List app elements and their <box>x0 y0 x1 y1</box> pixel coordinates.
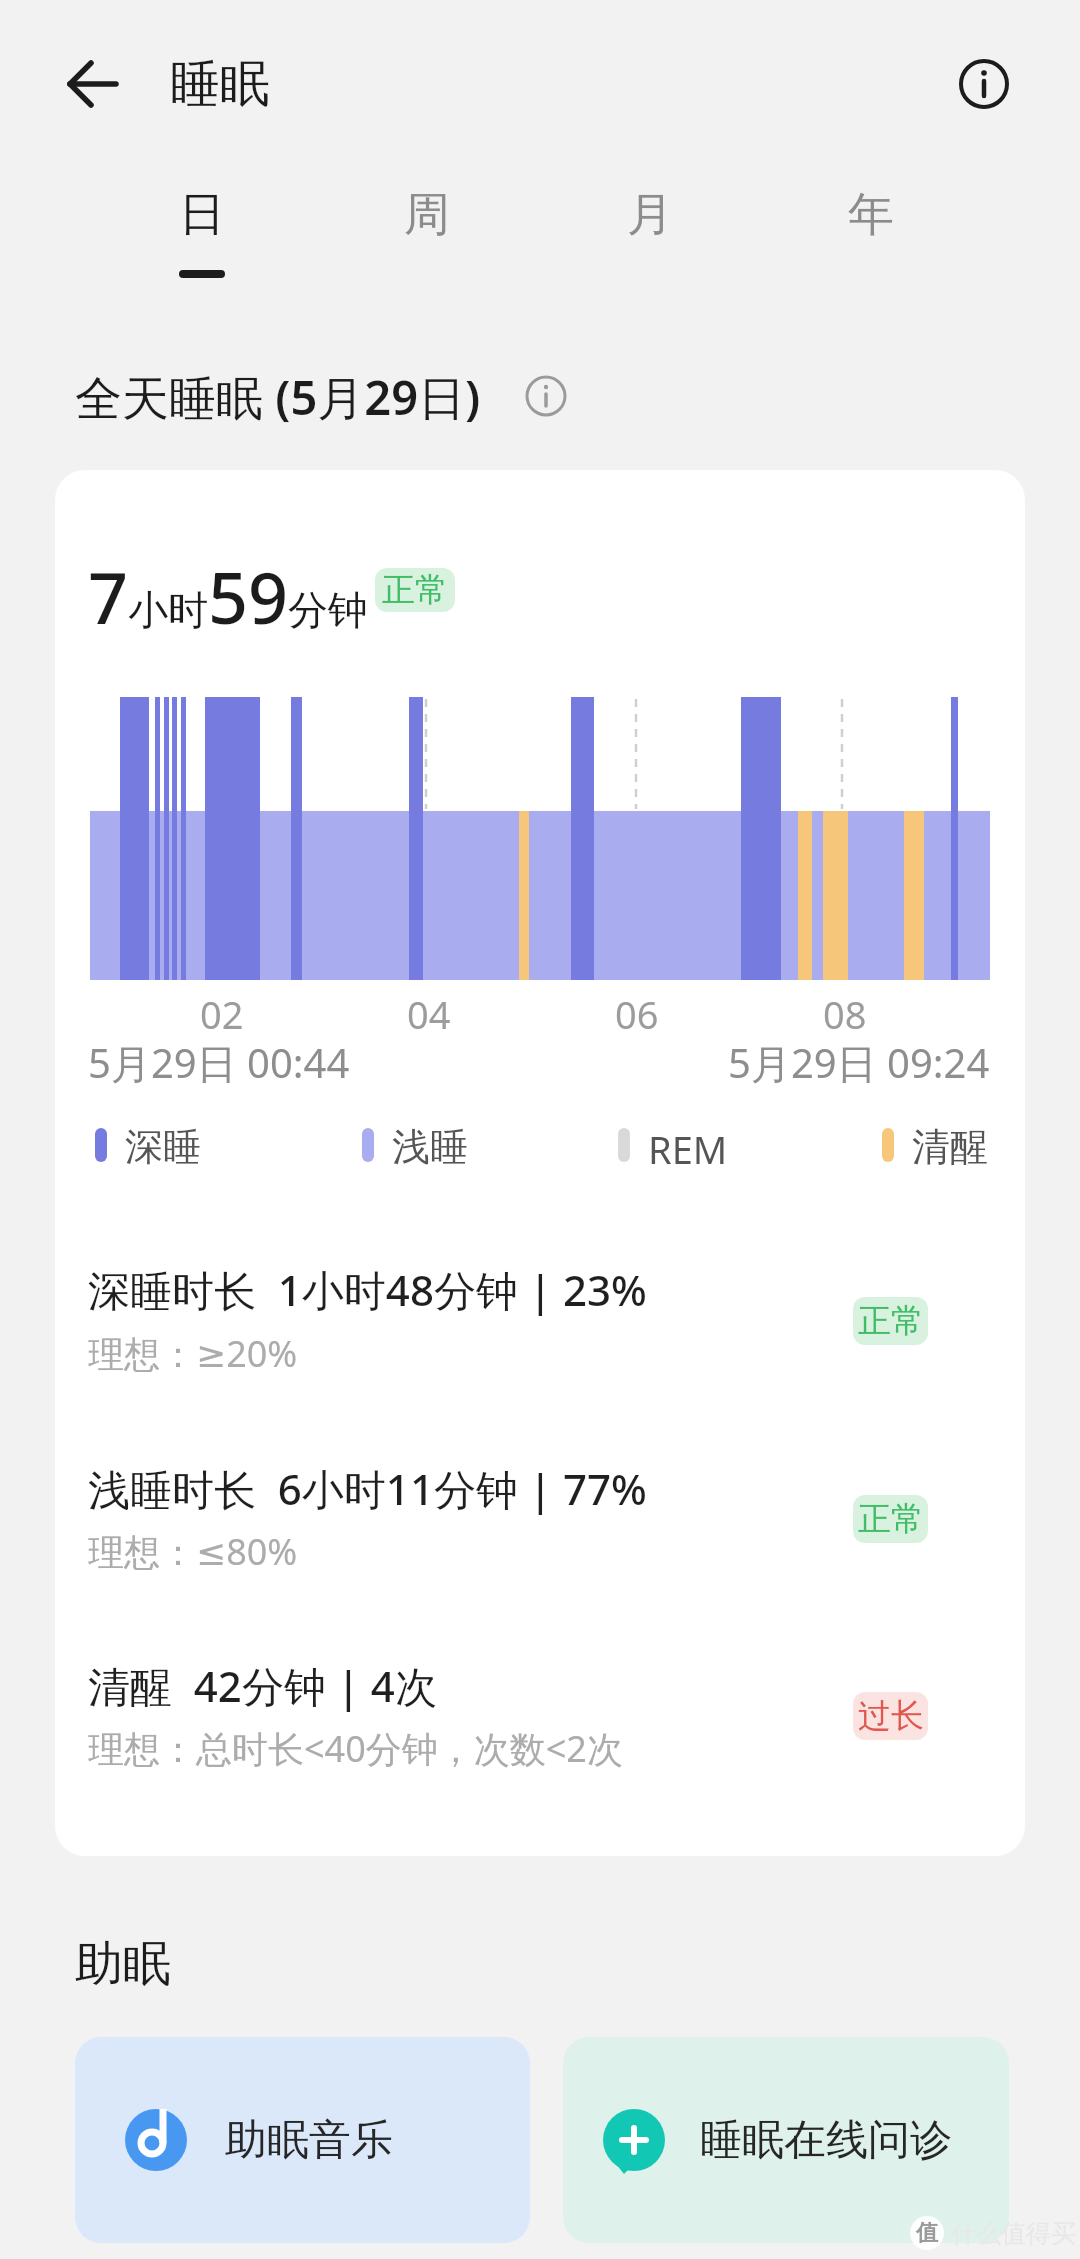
staticText: 理想：总时长<40分钟，次数<2次 <box>88 1724 623 1772</box>
button[interactable] <box>520 370 572 422</box>
staticText: 清醒 42分钟 | 4次 <box>88 1657 437 1711</box>
button[interactable]: 助眠音乐 <box>75 2037 530 2243</box>
staticText: 日 <box>179 186 225 244</box>
staticText: 深睡时长 1小时48分钟 | 23% <box>88 1261 647 1315</box>
staticText: REM <box>648 1123 728 1169</box>
staticText: 5月29日 00:44 <box>88 1035 350 1081</box>
button[interactable]: 日 <box>132 178 272 252</box>
staticText: 过长 <box>858 1695 924 1737</box>
staticText: 理想：≤80% <box>88 1527 298 1575</box>
button[interactable]: 年 <box>801 178 941 252</box>
button[interactable]: 月 <box>580 178 720 252</box>
staticText: 理想：≥20% <box>88 1329 298 1377</box>
staticText: 值 <box>916 2219 938 2247</box>
staticText: 08 <box>823 988 867 1030</box>
button[interactable] <box>952 52 1016 116</box>
staticText: 正常 <box>858 1300 924 1342</box>
staticText: 06 <box>615 988 659 1030</box>
staticText: 周 <box>404 186 450 244</box>
staticText: 助眠 <box>75 1934 171 1994</box>
staticText: 睡眠在线问诊 <box>700 2114 952 2167</box>
staticText: 04 <box>407 988 451 1030</box>
staticText: 5月29日 09:24 <box>728 1035 990 1081</box>
button[interactable]: 睡眠在线问诊 <box>563 2037 1009 2243</box>
staticText: 全天睡眠 (5月29日) <box>75 365 481 427</box>
button[interactable]: 周 <box>357 178 497 252</box>
staticText: 浅睡 <box>392 1123 468 1169</box>
staticText: 深睡 <box>125 1123 201 1169</box>
staticText: 睡眠 <box>170 53 270 116</box>
staticText: 月 <box>627 186 673 244</box>
staticText: 02 <box>200 988 244 1030</box>
staticText: 什么值得买 <box>951 2218 1076 2249</box>
staticText: 正常 <box>382 569 448 611</box>
staticText: 正常 <box>858 1498 924 1540</box>
staticText: 助眠音乐 <box>225 2114 393 2167</box>
staticText: 浅睡时长 6小时11分钟 | 77% <box>88 1460 647 1514</box>
button[interactable] <box>52 50 132 118</box>
staticText: 年 <box>848 186 894 244</box>
staticText: 清醒 <box>912 1123 988 1169</box>
staticText: 7小时59分钟 <box>88 549 369 635</box>
